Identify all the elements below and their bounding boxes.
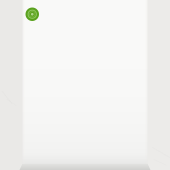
button[interactable]: Brand logo (25, 7, 39, 21)
